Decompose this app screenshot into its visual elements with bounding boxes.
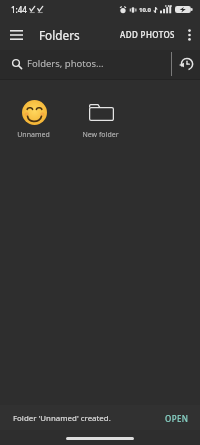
button[interactable]: More options (177, 23, 200, 47)
button[interactable]: ADD PHOTOS (114, 25, 181, 44)
button[interactable]: Search history (174, 51, 199, 76)
staticText: Folders (39, 27, 80, 43)
staticText: 10.0 (139, 6, 151, 14)
staticText: ADD PHOTOS (120, 29, 175, 40)
staticText: Unnamed (17, 130, 50, 140)
staticText: Folders, photos... (27, 57, 104, 70)
button[interactable]: New folder (67, 80, 134, 148)
staticText: Folder 'Unnamed' created. (13, 413, 111, 424)
button[interactable]: Open navigation drawer (4, 23, 28, 47)
staticText: 1:44 (11, 4, 27, 15)
staticText: OPEN (165, 413, 189, 424)
staticText: New folder (82, 130, 119, 140)
button[interactable]: Unnamed (0, 80, 67, 148)
button[interactable]: OPEN (154, 408, 200, 429)
